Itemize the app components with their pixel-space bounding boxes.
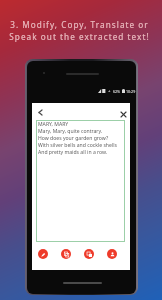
staticText: MARY, MARY <box>38 121 69 128</box>
button[interactable]: Back <box>35 107 46 118</box>
staticText: And pretty maids all in a row. <box>38 149 108 156</box>
staticText: 3. Modify, Copy, Translate or <box>10 19 149 30</box>
button[interactable]: Translate <box>84 249 94 259</box>
button[interactable]: Speak <box>107 249 117 259</box>
staticText: 62% <box>113 89 121 94</box>
staticText: Speak out the extracted text! <box>9 31 150 42</box>
button[interactable]: Copy <box>61 249 71 259</box>
staticText: How does your garden grow? <box>38 135 109 142</box>
button[interactable]: Edit <box>38 249 48 259</box>
button[interactable]: Close <box>118 109 128 119</box>
staticText: + <box>108 88 111 94</box>
staticText: With silver bells and cockle shells <box>38 142 117 149</box>
staticText: 10:29 <box>126 89 136 94</box>
staticText: Mary, Mary, quite contrary. <box>38 128 103 135</box>
